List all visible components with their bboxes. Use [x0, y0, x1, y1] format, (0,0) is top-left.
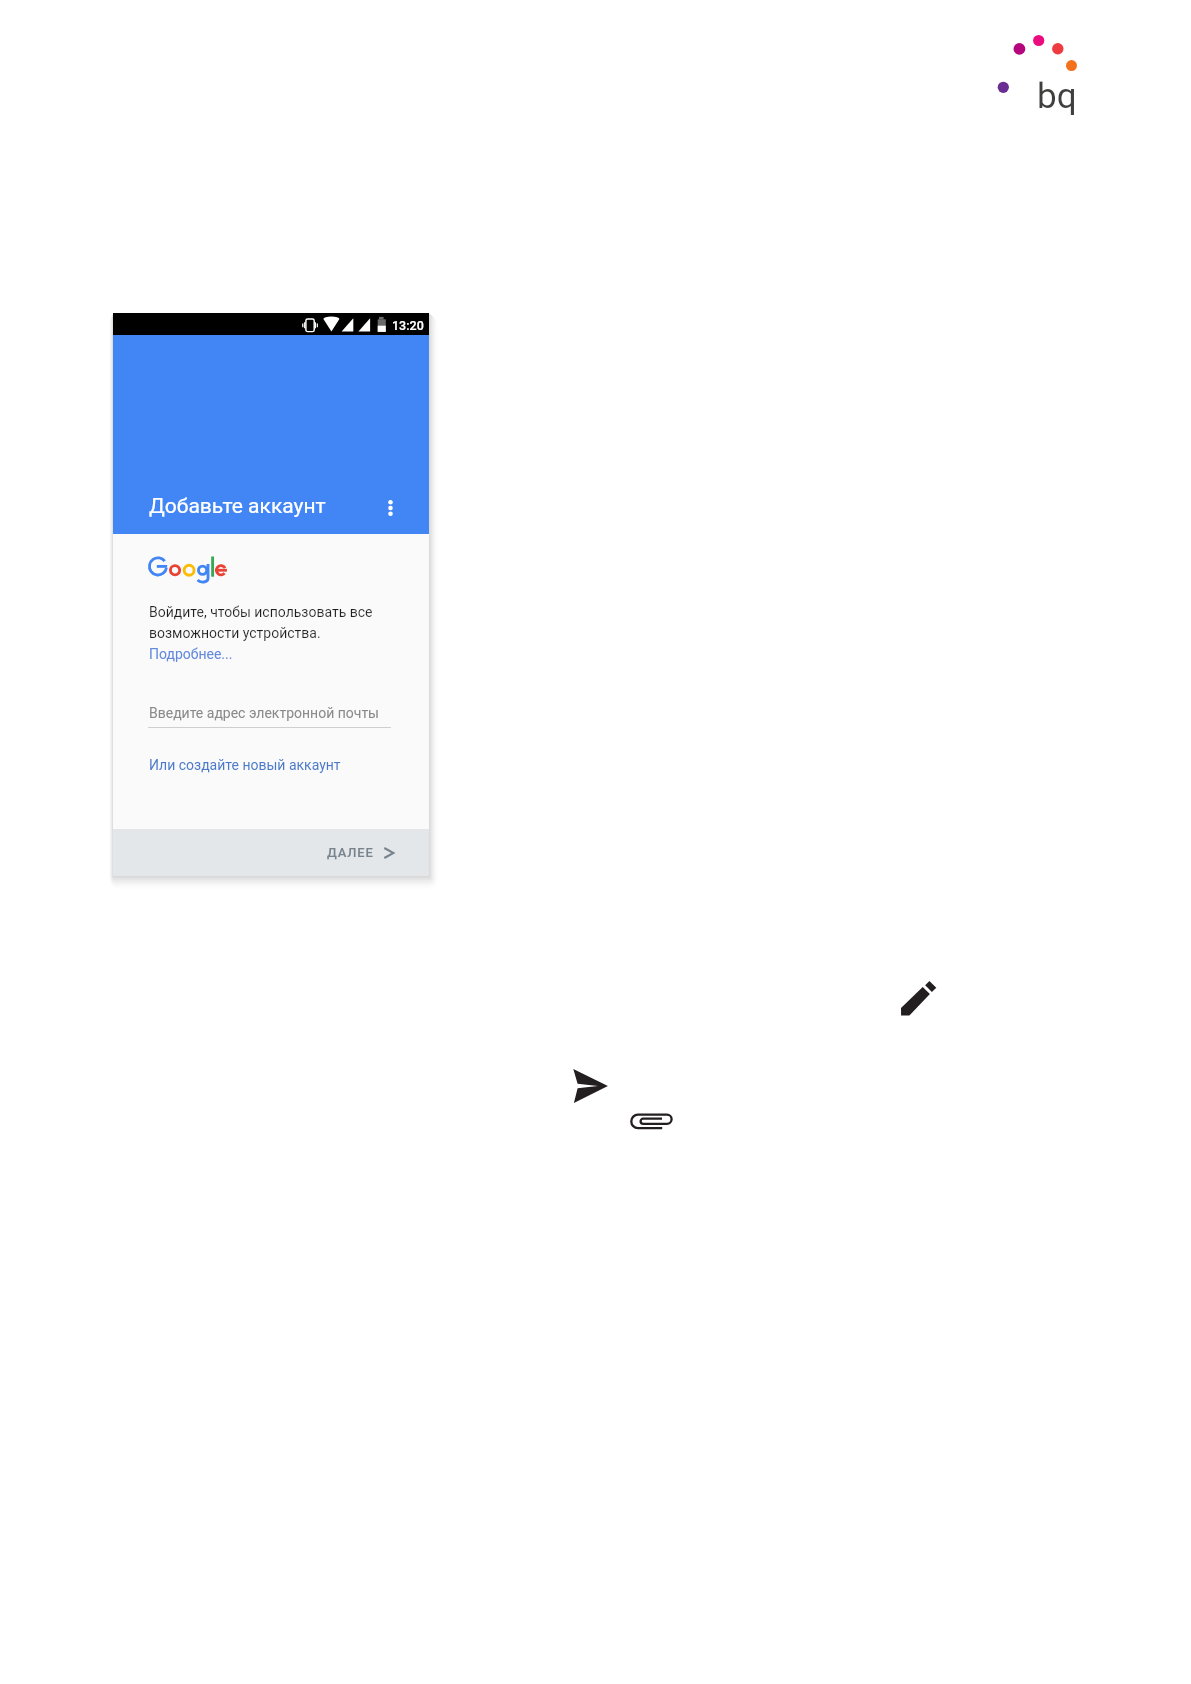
button[interactable]: Send	[570, 1065, 610, 1105]
staticText: bq	[1037, 76, 1077, 117]
staticText: Добавьте аккаунт	[149, 494, 326, 519]
button[interactable]: Edit	[898, 978, 938, 1018]
other: Google	[148, 555, 232, 584]
button[interactable]: Attach	[628, 1107, 676, 1135]
staticText: Войдите, чтобы использовать все возможно…	[149, 604, 373, 641]
staticText: Введите адрес электронной почты	[149, 705, 379, 721]
button[interactable]: Подробнее...	[149, 646, 233, 662]
button[interactable]: Или создайте новый аккаунт	[149, 757, 341, 773]
other: bq logo	[986, 22, 1096, 122]
button[interactable]: ДАЛЕЕ	[327, 839, 394, 854]
staticText: 13:20	[392, 318, 424, 333]
button[interactable]: More options	[368, 486, 412, 530]
staticText: ДАЛЕЕ	[327, 845, 374, 860]
